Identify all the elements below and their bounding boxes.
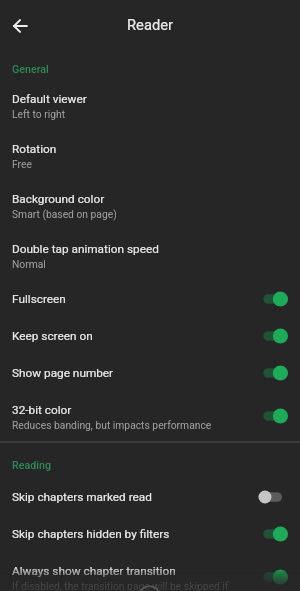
staticText: Reader xyxy=(0,16,300,33)
staticText: Smart (based on page) xyxy=(12,208,117,220)
button[interactable]: Double tap animation speed xyxy=(0,230,300,280)
button[interactable]: Default viewer xyxy=(0,80,300,130)
staticText: Default viewer xyxy=(12,92,87,106)
button[interactable]: Skip chapters marked read xyxy=(0,478,300,515)
button[interactable]: Fullscreen xyxy=(0,280,300,317)
staticText: Always show chapter transition xyxy=(12,564,176,578)
staticText: Keep screen on xyxy=(12,329,93,343)
staticText: Free xyxy=(12,158,32,170)
button[interactable]: Always show chapter transition xyxy=(0,552,300,591)
button[interactable]: Show page number xyxy=(0,354,300,391)
staticText: Skip chapters marked read xyxy=(12,490,152,504)
button[interactable]: Background color xyxy=(0,180,300,230)
staticText: General xyxy=(12,63,49,76)
staticText: Show page number xyxy=(12,366,114,380)
staticText: Background color xyxy=(12,192,105,206)
staticText: Double tap animation speed xyxy=(12,242,159,256)
button[interactable]: Keep screen on xyxy=(0,317,300,354)
staticText: Skip chapters hidden by filters xyxy=(12,527,170,541)
button[interactable]: 32-bit color xyxy=(0,391,300,441)
button[interactable]: Rotation xyxy=(0,130,300,180)
staticText: Rotation xyxy=(12,142,57,156)
staticText: Left to right xyxy=(12,108,66,120)
button[interactable]: Back xyxy=(0,6,40,46)
staticText: Normal xyxy=(12,258,46,270)
staticText: Reduces banding, but impacts performance xyxy=(12,419,212,431)
staticText: Reading xyxy=(12,459,51,472)
staticText: 32-bit color xyxy=(12,403,72,417)
button[interactable]: Skip chapters hidden by filters xyxy=(0,515,300,552)
staticText: If disabled, the transition page will be… xyxy=(12,580,229,591)
staticText: Fullscreen xyxy=(12,292,66,306)
